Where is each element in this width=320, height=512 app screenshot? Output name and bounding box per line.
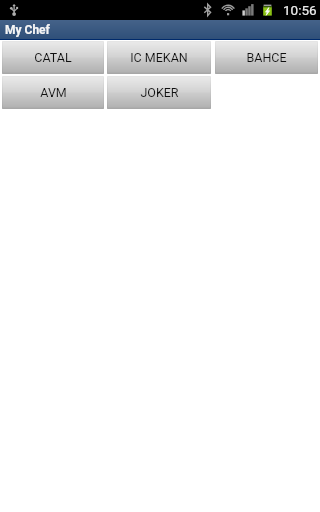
staticText: My Chef <box>5 23 50 37</box>
button[interactable]: AVM <box>2 76 104 109</box>
button[interactable]: CATAL <box>2 41 104 74</box>
button[interactable]: IC MEKAN <box>107 41 211 74</box>
other: Status bar <box>0 0 320 20</box>
button[interactable]: JOKER <box>107 76 211 109</box>
staticText: CATAL <box>34 50 72 65</box>
staticText: JOKER <box>140 85 179 100</box>
staticText: AVM <box>40 85 67 100</box>
staticText: 10:56 <box>283 2 317 18</box>
staticText: BAHCE <box>246 50 287 65</box>
staticText: IC MEKAN <box>130 50 188 65</box>
button[interactable]: BAHCE <box>215 41 318 74</box>
